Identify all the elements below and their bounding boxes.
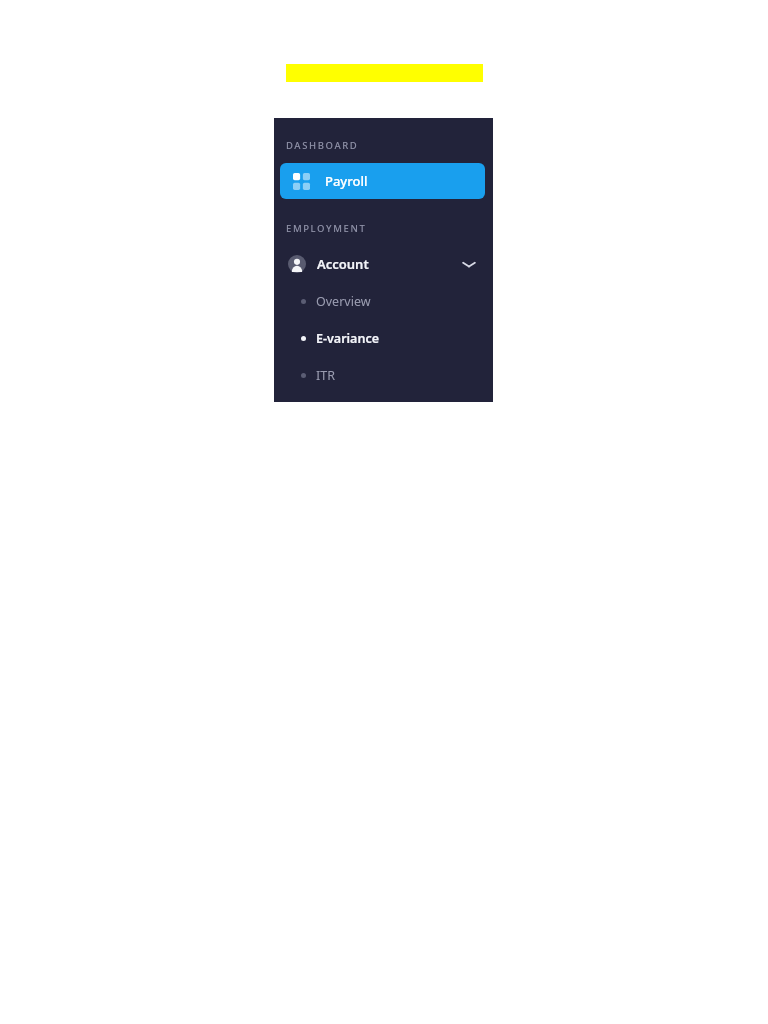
staticText: Account bbox=[317, 255, 369, 273]
other: Collapse Account bbox=[462, 260, 476, 269]
button[interactable]: E-variance bbox=[274, 326, 485, 350]
button[interactable]: Account bbox=[280, 248, 485, 280]
button[interactable]: Payroll bbox=[280, 163, 485, 199]
staticText: Payroll bbox=[325, 172, 368, 190]
staticText: Overview bbox=[316, 293, 371, 310]
button[interactable]: ITR bbox=[274, 363, 485, 387]
staticText: E-variance bbox=[316, 330, 379, 347]
staticText: EMPLOYMENT bbox=[286, 222, 367, 235]
staticText: ITR bbox=[316, 367, 335, 384]
staticText: DASHBOARD bbox=[286, 139, 359, 152]
button[interactable]: Overview bbox=[274, 289, 485, 313]
